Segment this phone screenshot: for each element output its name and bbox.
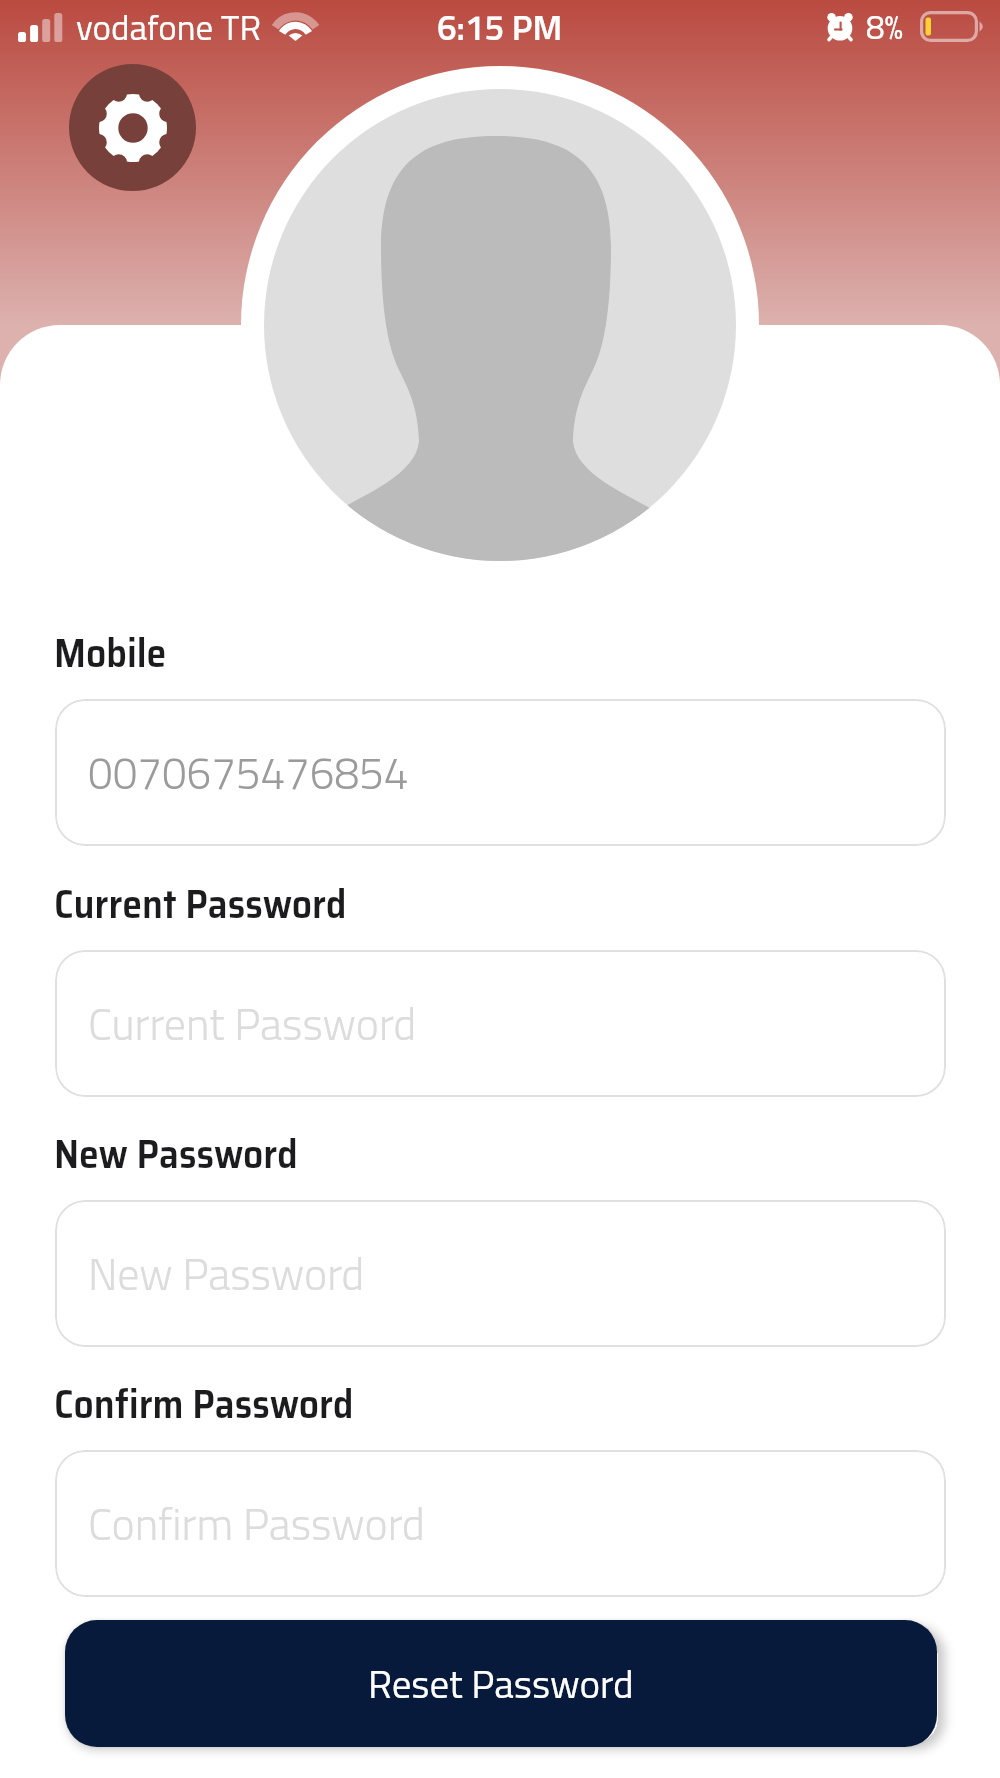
staticText: Confirm Password bbox=[54, 1373, 354, 1436]
staticText: vodafone TR bbox=[76, 0, 261, 53]
staticText: Confirm Password bbox=[88, 1490, 425, 1557]
staticText: New Password bbox=[88, 1240, 365, 1307]
staticText: Current Password bbox=[54, 873, 347, 936]
staticText: Current Password bbox=[88, 990, 417, 1057]
staticText: Mobile bbox=[54, 622, 167, 685]
button[interactable]: 0070675476854 bbox=[55, 699, 946, 846]
staticText: 8% bbox=[866, 2, 903, 52]
button[interactable]: Current Password bbox=[55, 950, 946, 1097]
button[interactable]: Settings bbox=[69, 64, 196, 191]
staticText: 0070675476854 bbox=[88, 739, 409, 806]
staticText: New Password bbox=[54, 1123, 298, 1186]
staticText: 6:15 PM bbox=[437, 0, 563, 53]
button[interactable]: Confirm Password bbox=[55, 1450, 946, 1597]
button[interactable]: Reset Password bbox=[65, 1620, 937, 1747]
button[interactable]: New Password bbox=[55, 1200, 946, 1347]
staticText: Reset Password bbox=[368, 1654, 634, 1713]
